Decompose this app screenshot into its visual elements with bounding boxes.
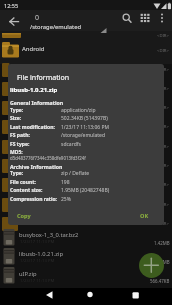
- button[interactable]: [0, 228, 172, 247]
- staticText: <DIR>: [157, 124, 169, 130]
- button[interactable]: [0, 31, 172, 41]
- staticText: 1/23/17 11:13:06 PM: [61, 124, 110, 131]
- button[interactable]: [0, 266, 172, 285]
- staticText: <DIR>: [157, 221, 169, 227]
- staticText: 1/23/17 11:13 PM: [20, 278, 55, 284]
- staticText: 1.95MB (20482748B): [61, 187, 110, 194]
- staticText: d5d483776f7344c358dfe9013fd3f24f: [10, 155, 86, 161]
- staticText: <DIR>: [157, 202, 169, 208]
- staticText: Copy: [17, 212, 31, 220]
- staticText: MD5:: [10, 149, 23, 156]
- staticText: /storage/emulated: [61, 132, 105, 139]
- staticText: <DIR>: [157, 67, 169, 73]
- staticText: /storage/emulated: [30, 23, 82, 31]
- button[interactable]: [122, 288, 150, 305]
- staticText: libusb-1.0.21.zip: [19, 250, 64, 258]
- staticText: application/zip: [61, 107, 96, 114]
- button[interactable]: [133, 12, 151, 30]
- staticText: sdcardfs: [61, 141, 81, 148]
- staticText: <DIR>: [157, 48, 169, 54]
- staticText: <DIR>: [157, 182, 169, 188]
- staticText: <DIR>: [157, 163, 169, 169]
- staticText: Android: [22, 45, 45, 53]
- staticText: 1.42MB: [154, 240, 170, 246]
- staticText: Archive Information: [10, 163, 63, 170]
- staticText: 1/23/17 11:13 PM: [20, 258, 55, 264]
- staticText: 1.95MB: [154, 259, 170, 265]
- staticText: Type:: [10, 107, 24, 114]
- staticText: 502.34KB (514397B): [61, 115, 108, 122]
- button[interactable]: [0, 247, 172, 266]
- staticText: 0: [35, 13, 40, 23]
- button[interactable]: [139, 253, 164, 278]
- button[interactable]: OK: [128, 208, 161, 223]
- staticText: File information: [17, 73, 70, 83]
- staticText: <DIR>: [157, 105, 169, 111]
- staticText: General Information: [10, 99, 64, 106]
- staticText: <DIR>: [157, 144, 169, 150]
- staticText: FS path:: [10, 132, 30, 139]
- button[interactable]: [114, 12, 132, 30]
- staticText: zip / Deflate: [61, 170, 90, 177]
- button[interactable]: [0, 41, 172, 60]
- staticText: Content size:: [10, 187, 43, 194]
- button[interactable]: [10, 14, 30, 34]
- staticText: busybox-1_3_0.tar.bz2: [19, 231, 79, 239]
- staticText: File count:: [10, 179, 36, 186]
- button[interactable]: [151, 12, 165, 30]
- staticText: 566.47KB: [150, 278, 170, 284]
- staticText: <DIR>: [157, 86, 169, 92]
- staticText: 25%: [61, 196, 71, 203]
- button[interactable]: Copy: [10, 208, 50, 223]
- staticText: 198: [61, 179, 70, 186]
- staticText: <DIR>: [157, 33, 169, 39]
- staticText: 1/23/17 11:13 PM: [20, 239, 55, 245]
- staticText: OK: [140, 212, 149, 220]
- button[interactable]: [76, 288, 104, 305]
- staticText: Size:: [10, 115, 22, 122]
- staticText: Compression ratio:: [10, 196, 58, 203]
- staticText: FS type:: [10, 141, 30, 148]
- staticText: uIP.zip: [19, 270, 37, 278]
- button[interactable]: [36, 288, 64, 305]
- staticText: Type:: [10, 170, 24, 177]
- staticText: Last modification:: [10, 124, 55, 131]
- staticText: libusb-1.0.21.zip: [10, 86, 58, 94]
- staticText: 12:55: [4, 2, 19, 9]
